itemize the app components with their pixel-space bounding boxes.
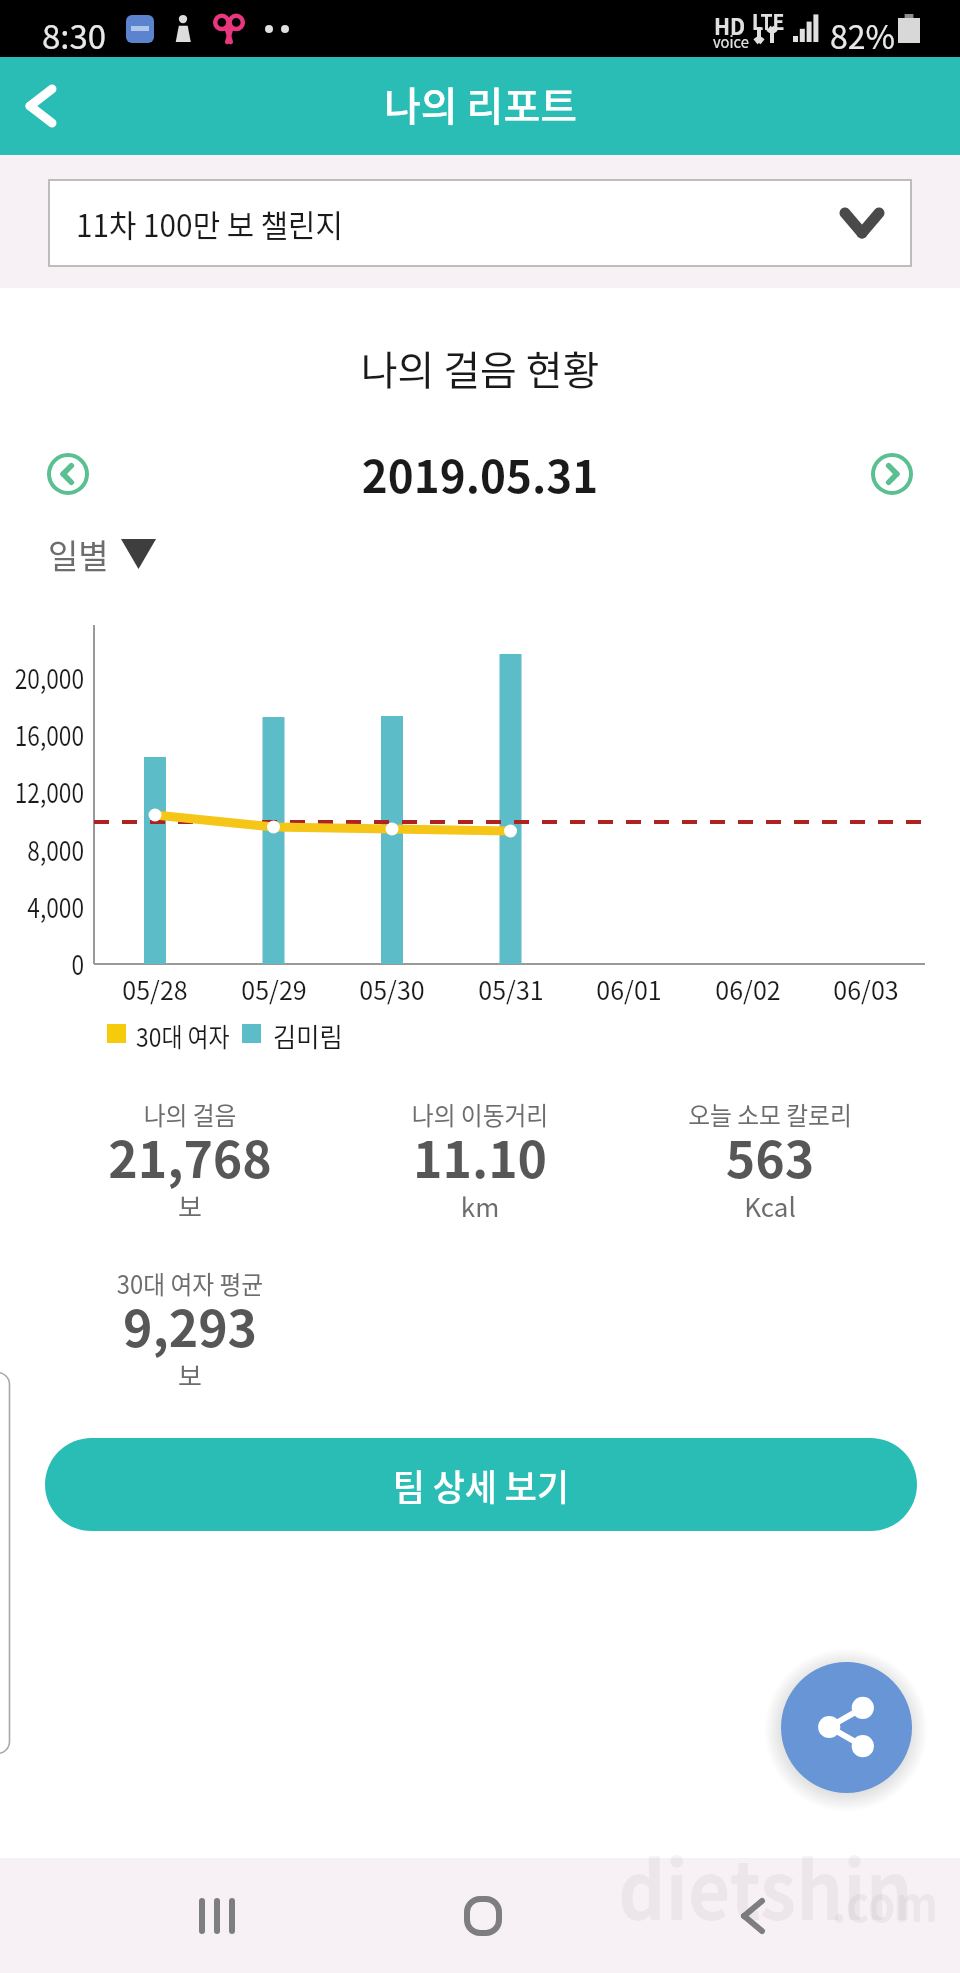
button[interactable]: Previous xyxy=(47,453,89,495)
staticText: 보 xyxy=(20,1356,360,1394)
button[interactable]: Recents xyxy=(155,1858,275,1973)
staticText: 05/29 xyxy=(214,971,334,1007)
staticText: 오늘 소모 칼로리 xyxy=(608,1096,931,1132)
staticText: 30대 여자 평균 xyxy=(28,1265,351,1301)
staticText: LTE xyxy=(752,6,785,36)
staticText: 05/30 xyxy=(332,971,452,1007)
staticText: 11.10 xyxy=(310,1120,650,1192)
staticText: 8:30 xyxy=(42,11,107,59)
button[interactable]: Next xyxy=(871,453,913,495)
staticText: 일별 xyxy=(48,530,109,579)
staticText: 06/02 xyxy=(688,971,808,1007)
staticText: 11차 100만 보 챌린지 xyxy=(76,201,343,246)
staticText: voice xyxy=(713,29,750,52)
button[interactable]: 팀 상세 보기 xyxy=(45,1438,917,1531)
staticText: km xyxy=(310,1187,650,1225)
staticText: 나의 걸음 현황 xyxy=(0,339,960,397)
staticText: 563 xyxy=(600,1120,940,1192)
staticText: 4,000 xyxy=(0,887,84,926)
staticText: 김미림 xyxy=(273,1017,343,1055)
button[interactable]: Back xyxy=(0,57,82,155)
button[interactable]: Back xyxy=(693,1858,813,1973)
staticText: 나의 이동거리 xyxy=(318,1096,641,1132)
staticText: 0 xyxy=(0,944,84,983)
staticText: 82% xyxy=(830,12,895,58)
staticText: 05/31 xyxy=(451,971,571,1007)
button[interactable]: Share xyxy=(781,1662,912,1793)
staticText: 2019.05.31 xyxy=(0,442,960,506)
button[interactable]: 일별 xyxy=(44,526,166,582)
staticText: 9,293 xyxy=(20,1289,360,1361)
staticText: 06/03 xyxy=(806,971,926,1007)
staticText: 16,000 xyxy=(0,715,84,754)
staticText: HD xyxy=(714,8,745,41)
staticText: .com xyxy=(832,1866,939,1936)
staticText: 20,000 xyxy=(0,658,84,697)
staticText: 나의 리포트 xyxy=(384,75,577,133)
staticText: dietshin xyxy=(618,1827,913,1943)
staticText: 보 xyxy=(20,1187,360,1225)
button[interactable]: Home xyxy=(423,1858,543,1973)
staticText: 21,768 xyxy=(20,1120,360,1192)
staticText: 12,000 xyxy=(0,772,84,811)
staticText: 나의 걸음 xyxy=(28,1096,351,1132)
staticText: 06/01 xyxy=(569,971,689,1007)
staticText: 팀 상세 보기 xyxy=(393,1459,569,1511)
staticText: 8,000 xyxy=(0,830,84,869)
staticText: Kcal xyxy=(600,1187,940,1225)
button[interactable]: 11차 100만 보 챌린지 xyxy=(48,179,912,267)
staticText: 05/28 xyxy=(95,971,215,1007)
staticText: 30대 여자 xyxy=(136,1017,230,1055)
